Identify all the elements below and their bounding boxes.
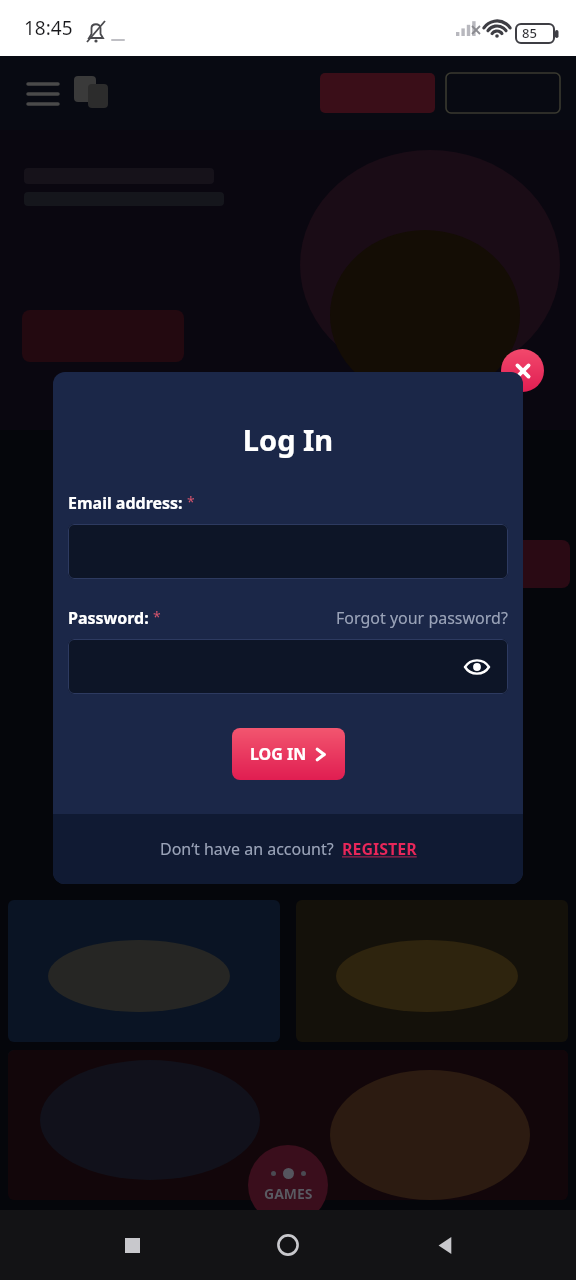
staticText: Password:	[68, 607, 149, 629]
staticText: GAMES	[264, 1184, 313, 1203]
button[interactable]: Home	[264, 1221, 312, 1269]
staticText: Log In	[53, 420, 523, 459]
button[interactable]: Back	[420, 1221, 468, 1269]
button[interactable]: Password input	[68, 639, 508, 694]
button[interactable]: REGISTER	[342, 838, 417, 860]
staticText: Don‘t have an account?	[160, 838, 334, 860]
button[interactable]: Forgot your password?	[336, 607, 508, 629]
staticText: 18:45	[24, 15, 73, 41]
button[interactable]: Email address input	[68, 524, 508, 579]
button[interactable]: LOG IN	[232, 728, 345, 780]
staticText: LOG IN	[250, 743, 307, 765]
staticText: Email address:	[68, 492, 183, 514]
button[interactable]: Recent apps	[108, 1221, 156, 1269]
staticText: REGISTER	[342, 838, 417, 860]
button[interactable]: Close	[501, 349, 544, 392]
staticText: *	[187, 492, 195, 511]
button[interactable]: Show password	[462, 652, 492, 682]
staticText: 85	[522, 24, 537, 42]
button[interactable]: Games	[248, 1145, 328, 1225]
staticText: Forgot your password?	[336, 607, 508, 629]
staticText: *	[153, 607, 161, 626]
